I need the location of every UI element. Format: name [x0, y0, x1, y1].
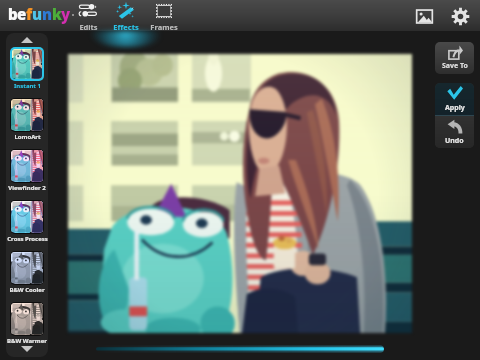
staticText: B&W Warmer	[7, 337, 47, 345]
button[interactable]: Apply	[435, 83, 474, 115]
staticText: k	[52, 4, 61, 24]
button[interactable]: Cross Process	[6, 200, 48, 243]
staticText: B&W Cooler	[9, 286, 45, 294]
staticText: Save To	[442, 61, 468, 71]
staticText: Effects	[113, 22, 139, 31]
button[interactable]: Viewfinder 2	[6, 149, 48, 192]
staticText: Cross Process	[7, 235, 48, 243]
staticText: f	[26, 4, 32, 24]
button[interactable]: Effects	[107, 0, 145, 31]
button[interactable]: Photos	[411, 3, 437, 29]
button[interactable]: B&W Cooler	[6, 251, 48, 294]
staticText: n	[42, 4, 52, 24]
staticText: y	[61, 4, 70, 24]
staticText: Apply	[445, 103, 465, 113]
button[interactable]: LomoArt	[6, 98, 48, 141]
button[interactable]: Frames	[145, 0, 183, 31]
staticText: Edits	[79, 22, 98, 31]
staticText: Viewfinder 2	[8, 184, 46, 192]
button[interactable]: Save To	[435, 42, 474, 74]
button[interactable]: Instant 1	[6, 47, 48, 90]
staticText: e	[17, 4, 26, 24]
button[interactable]: Settings	[447, 3, 473, 29]
staticText: Instant 1	[14, 82, 41, 90]
staticText: LomoArt	[14, 133, 41, 141]
staticText: Undo	[445, 136, 464, 146]
staticText: u	[32, 4, 42, 24]
button[interactable]: Edits	[69, 0, 107, 31]
button[interactable]: Undo	[435, 116, 474, 148]
button[interactable]: B&W Warmer	[6, 302, 48, 345]
staticText: b	[8, 4, 17, 24]
staticText: Frames	[150, 22, 178, 31]
button[interactable]: BeFunky	[8, 4, 74, 24]
